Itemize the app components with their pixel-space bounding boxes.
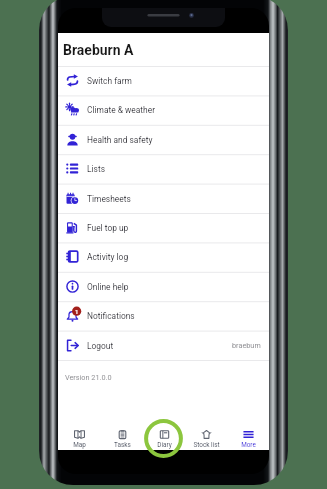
staticText: Switch farm — [87, 76, 132, 86]
button[interactable]: Tasks — [101, 410, 143, 450]
button[interactable]: Activity log — [58, 242, 269, 271]
staticText: Climate & weather — [87, 105, 156, 115]
button[interactable]: Switch farm — [58, 66, 269, 95]
button[interactable]: Health and safety — [58, 125, 269, 154]
staticText: Health and safety — [87, 135, 153, 145]
button[interactable]: Lists — [58, 154, 269, 183]
button[interactable]: Online help — [58, 272, 269, 301]
button[interactable]: Map — [58, 410, 101, 450]
staticText: Notifications — [87, 311, 135, 321]
staticText: Diary — [157, 441, 172, 449]
staticText: Activity log — [87, 252, 129, 262]
staticText: Fuel top up — [87, 223, 129, 233]
button[interactable]: Diary — [143, 410, 185, 450]
staticText: Version 21.0.0 — [65, 373, 112, 382]
staticText: Braeburn A — [63, 42, 134, 58]
staticText: More — [241, 441, 256, 449]
staticText: Tasks — [114, 441, 131, 449]
staticText: Stock list — [193, 441, 220, 449]
staticText: Logout — [87, 341, 114, 351]
button[interactable]: Fuel top up — [58, 213, 269, 242]
button[interactable]: Stock list — [185, 410, 227, 450]
button[interactable]: Climate & weather — [58, 95, 269, 124]
button[interactable]: Timesheets — [58, 184, 269, 213]
staticText: Lists — [87, 164, 105, 174]
button[interactable]: More — [227, 410, 269, 450]
staticText: Map — [73, 441, 86, 449]
staticText: braeburn — [232, 341, 261, 350]
button[interactable]: Logout — [58, 331, 269, 360]
staticText: Timesheets — [87, 194, 131, 204]
staticText: 1 — [75, 308, 79, 315]
staticText: Online help — [87, 282, 129, 292]
button[interactable]: 1 — [58, 301, 269, 330]
